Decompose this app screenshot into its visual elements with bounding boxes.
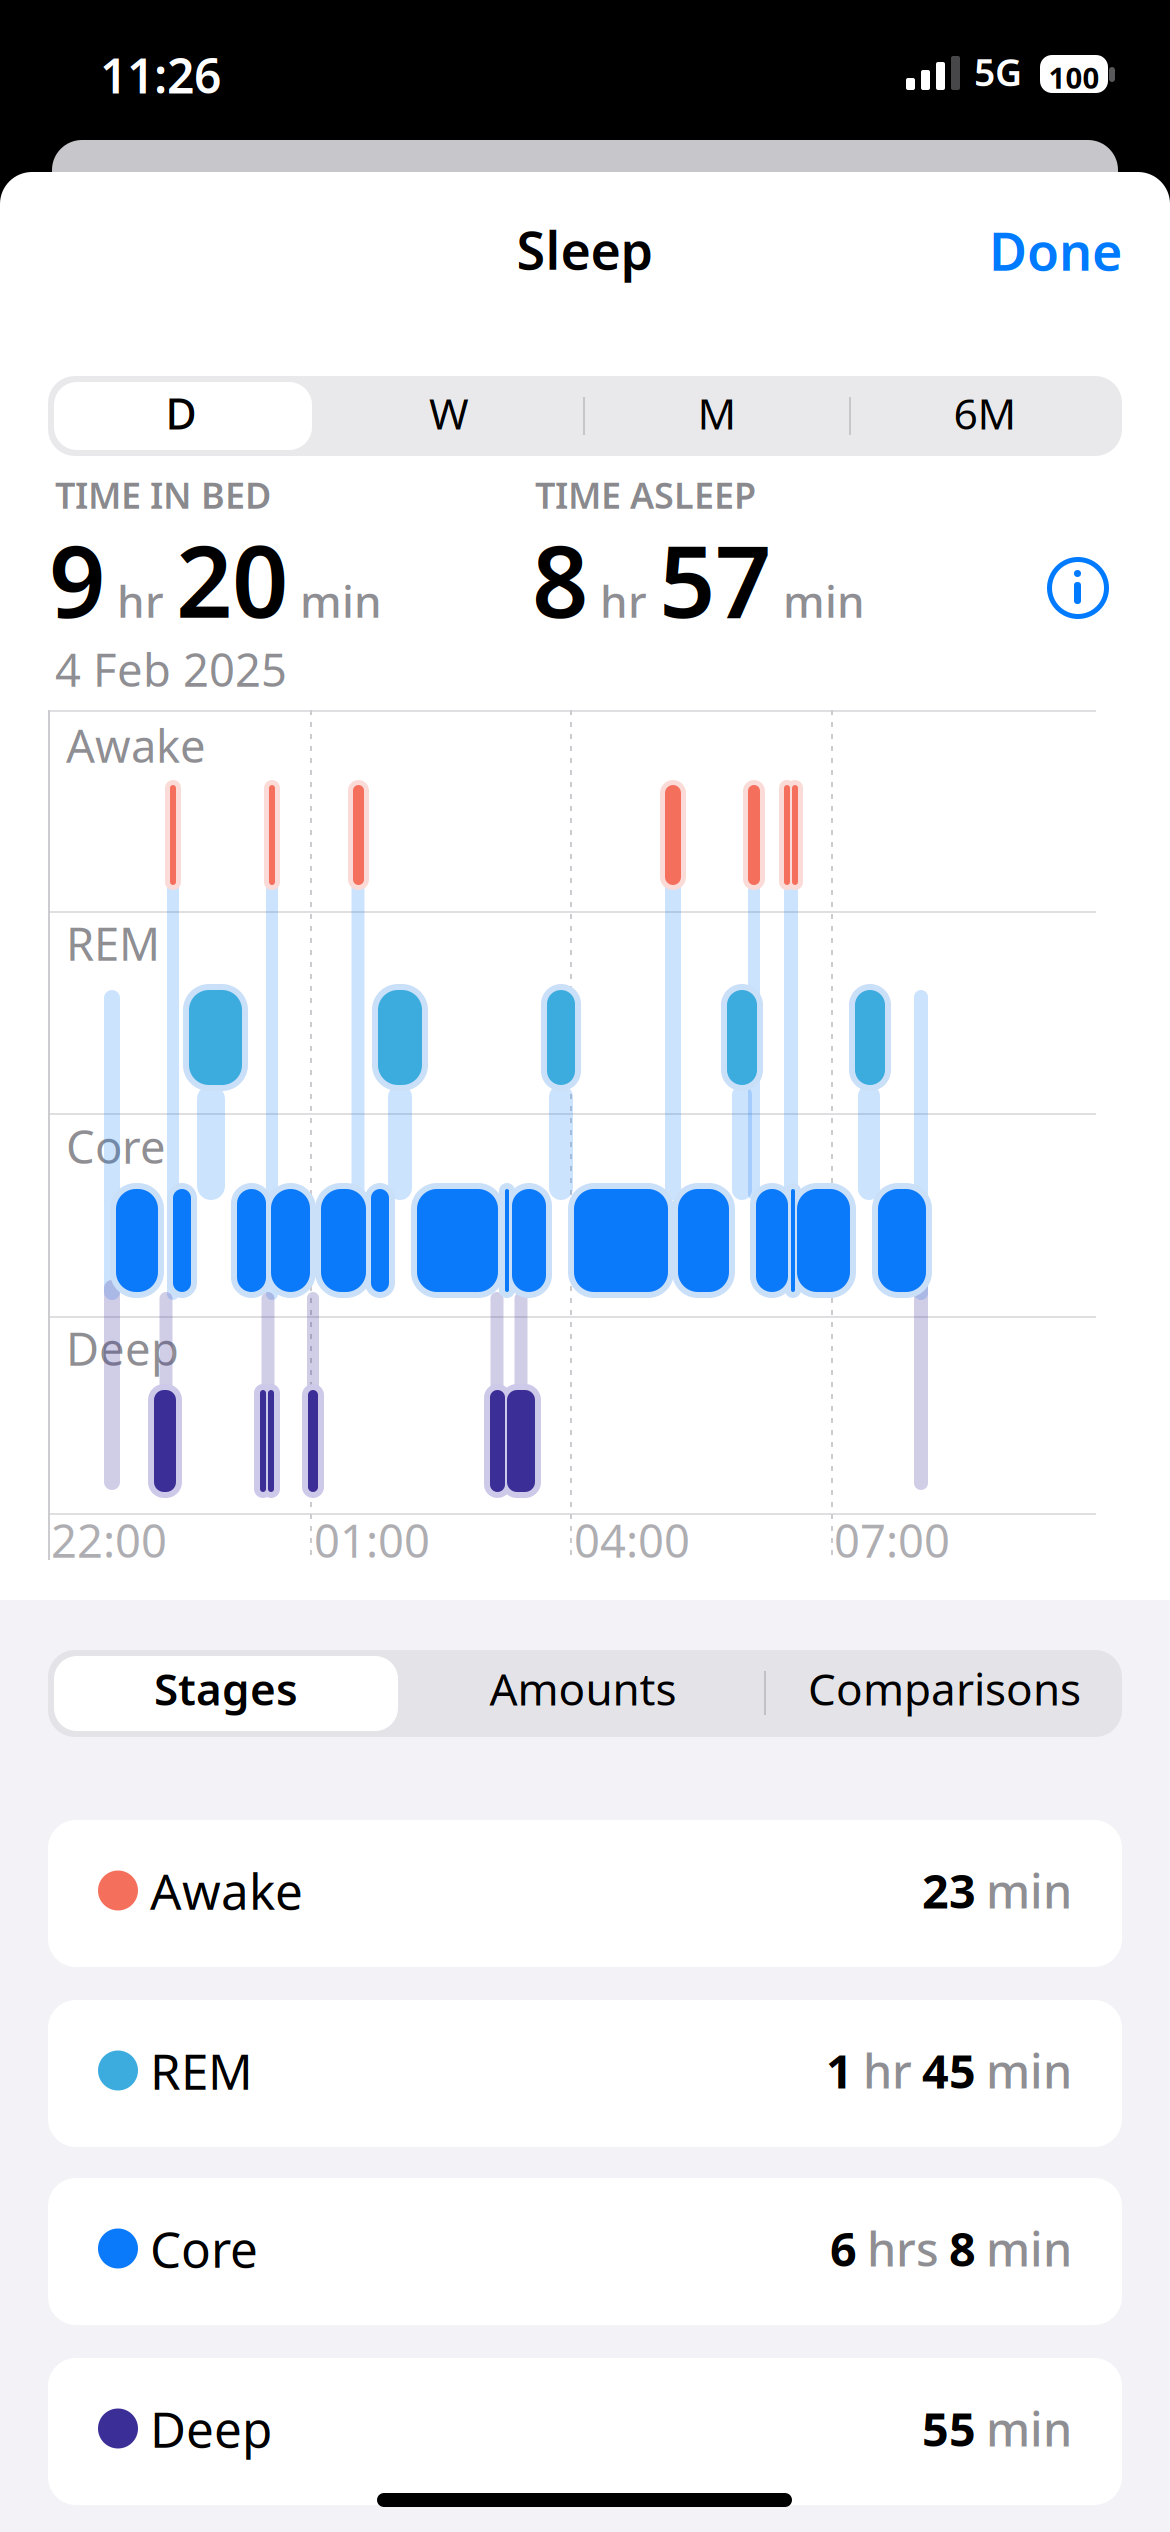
staticText: min: [783, 571, 865, 630]
staticText: REM: [150, 2038, 253, 2103]
staticText: 9: [49, 514, 105, 645]
staticText: D: [165, 385, 196, 441]
staticText: TIME IN BED: [55, 471, 271, 519]
staticText: hr: [863, 2039, 912, 2101]
staticText: W: [429, 385, 469, 441]
staticText: Core: [150, 2216, 258, 2281]
staticText: min: [986, 2039, 1072, 2101]
staticText: 55: [922, 2397, 976, 2459]
staticText: Done: [989, 216, 1122, 285]
button[interactable]: Done: [989, 216, 1122, 285]
staticText: 04:00: [574, 1510, 690, 1570]
staticText: Amounts: [489, 1659, 676, 1718]
staticText: 07:00: [834, 1510, 950, 1570]
staticText: min: [986, 2397, 1072, 2459]
staticText: Stages: [154, 1659, 298, 1718]
staticText: 5G: [974, 47, 1022, 97]
staticText: REM: [66, 913, 160, 973]
button[interactable]: W: [316, 373, 582, 453]
staticText: TIME ASLEEP: [535, 471, 756, 519]
button[interactable]: D: [48, 373, 314, 453]
button[interactable]: Comparisons: [767, 1645, 1122, 1732]
staticText: hr: [117, 571, 164, 630]
staticText: hrs: [867, 2217, 939, 2279]
staticText: 8: [532, 514, 588, 645]
staticText: 57: [659, 514, 771, 645]
staticText: 22:00: [51, 1510, 167, 1570]
button[interactable]: M: [584, 373, 850, 453]
staticText: M: [697, 385, 736, 441]
staticText: hr: [600, 571, 647, 630]
staticText: Core: [66, 1116, 166, 1176]
staticText: 20: [176, 514, 288, 645]
button[interactable]: 6M: [852, 373, 1118, 453]
button[interactable]: Core: [48, 2178, 1122, 2325]
staticText: 23: [922, 1859, 976, 1921]
staticText: 4 Feb 2025: [55, 639, 287, 699]
button[interactable]: Amounts: [403, 1645, 763, 1732]
staticText: 6: [830, 2217, 857, 2279]
staticText: 8: [949, 2217, 976, 2279]
staticText: 01:00: [314, 1510, 430, 1570]
staticText: 6M: [953, 385, 1016, 441]
staticText: Awake: [150, 1858, 303, 1923]
staticText: Deep: [150, 2396, 272, 2461]
button[interactable]: REM: [48, 2000, 1122, 2147]
staticText: Sleep: [516, 215, 653, 284]
staticText: 100: [1048, 58, 1099, 97]
staticText: Awake: [66, 715, 206, 775]
staticText: 11:26: [100, 43, 221, 107]
button[interactable]: [1047, 557, 1109, 619]
staticText: min: [986, 2217, 1072, 2279]
button[interactable]: Awake: [48, 1820, 1122, 1967]
staticText: Deep: [66, 1318, 179, 1378]
staticText: 45: [922, 2039, 976, 2101]
button[interactable]: Deep: [48, 2358, 1122, 2505]
staticText: 1: [826, 2039, 853, 2101]
button[interactable]: Stages: [51, 1645, 401, 1732]
staticText: min: [300, 571, 382, 630]
staticText: min: [986, 1859, 1072, 1921]
staticText: Comparisons: [808, 1659, 1081, 1718]
